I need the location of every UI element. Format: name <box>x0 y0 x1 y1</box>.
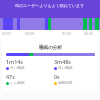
staticText: 3m48s <box>54 58 71 65</box>
staticText: 0s <box>54 73 60 80</box>
staticText: 1m14s <box>6 58 23 65</box>
staticText: 睡眠の分析 <box>2 45 99 51</box>
staticText: 他のユーザーよりもよく眠れています <box>15 3 85 8</box>
staticText: 浅い睡眠 <box>58 66 73 71</box>
staticText: 02:56 <box>84 31 94 36</box>
staticText: 00:56 <box>25 31 35 36</box>
staticText: 23:57 <box>2 31 12 36</box>
staticText: レム睡眠 <box>10 81 25 86</box>
button[interactable]: 睡眠の分析 <box>2 40 99 91</box>
staticText: 覚醒時間 <box>58 81 73 86</box>
staticText: 深い睡眠 <box>10 66 25 71</box>
staticText: 47s <box>6 73 15 80</box>
staticText: 01:56 <box>62 31 72 36</box>
